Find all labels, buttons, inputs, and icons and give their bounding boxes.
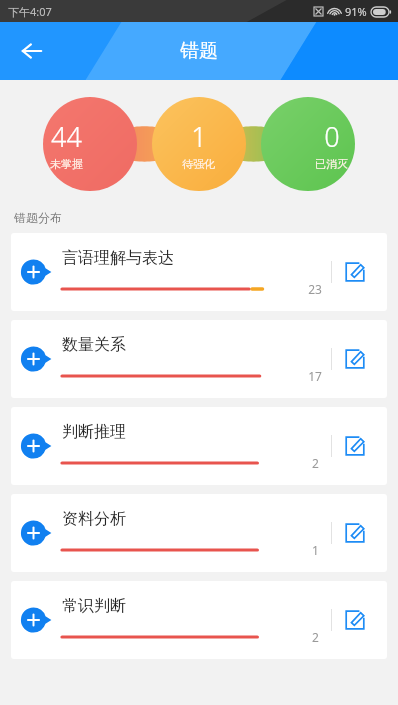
staticText: 数量关系 <box>62 335 126 355</box>
button[interactable]: Edit <box>332 336 378 382</box>
staticText: 错题 <box>180 39 218 63</box>
button[interactable]: Edit <box>332 510 378 556</box>
button[interactable]: Add <box>11 494 387 572</box>
staticText: 言语理解与表达 <box>62 248 174 268</box>
staticText: 待强化 <box>182 157 215 171</box>
staticText: 下午4:07 <box>8 4 52 19</box>
button[interactable]: Back <box>10 29 54 73</box>
staticText: 未掌握 <box>50 157 83 171</box>
staticText: 资料分析 <box>62 509 126 529</box>
button[interactable]: Add <box>11 233 387 311</box>
button[interactable]: Add <box>20 431 50 461</box>
button[interactable]: Edit <box>332 249 378 295</box>
button[interactable]: Add <box>20 518 50 548</box>
button[interactable]: Add <box>20 257 50 287</box>
staticText: 91% <box>345 4 367 19</box>
staticText: 判断推理 <box>62 422 126 442</box>
staticText: 常识判断 <box>62 596 126 616</box>
button[interactable]: Add <box>20 344 50 374</box>
staticText: 1 <box>191 118 207 155</box>
staticText: 1 <box>312 542 319 558</box>
button[interactable]: Add <box>20 605 50 635</box>
staticText: 44 <box>51 118 82 155</box>
button[interactable]: Add <box>11 407 387 485</box>
staticText: 0 <box>324 118 340 155</box>
staticText: 已消灭 <box>315 157 348 171</box>
button[interactable]: Add <box>11 320 387 398</box>
staticText: 2 <box>312 455 319 471</box>
staticText: 17 <box>308 368 322 384</box>
staticText: 错题分布 <box>14 210 62 225</box>
staticText: 23 <box>308 281 322 297</box>
button[interactable]: Add <box>11 581 387 659</box>
staticText: 2 <box>312 629 319 645</box>
button[interactable]: Edit <box>332 597 378 643</box>
button[interactable]: Edit <box>332 423 378 469</box>
